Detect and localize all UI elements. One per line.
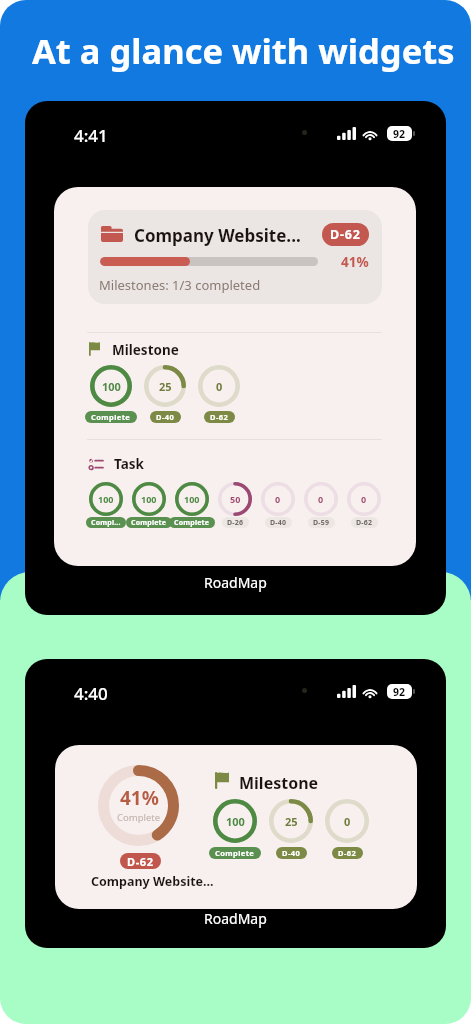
staticText: D-59 xyxy=(313,518,330,528)
staticText: 25 xyxy=(285,814,298,829)
staticText: D-40 xyxy=(282,848,301,858)
staticText: RoadMap xyxy=(204,573,267,592)
staticText: D-40 xyxy=(270,518,287,528)
staticText: Complete xyxy=(117,811,161,824)
staticText: Company Website... xyxy=(91,873,214,890)
staticText: At a glance with widgets xyxy=(32,27,455,74)
staticText: 100 xyxy=(98,493,114,505)
staticText: Company Website... xyxy=(134,224,301,247)
staticText: Milestones: 1/3 completed xyxy=(99,276,261,294)
staticText: 4:40 xyxy=(74,682,108,705)
staticText: 0 xyxy=(361,493,367,505)
staticText: Compl... xyxy=(91,518,121,528)
staticText: 41% xyxy=(120,785,159,811)
staticText: D-62 xyxy=(127,854,154,869)
staticText: 50 xyxy=(230,493,241,505)
staticText: Complete xyxy=(215,848,255,858)
staticText: 100 xyxy=(102,379,121,394)
staticText: 0 xyxy=(216,379,223,394)
staticText: 4:41 xyxy=(74,124,108,147)
staticText: D-40 xyxy=(156,412,175,422)
staticText: Complete xyxy=(131,518,167,528)
staticText: 92 xyxy=(393,127,406,141)
staticText: 0 xyxy=(275,493,281,505)
staticText: D-62 xyxy=(330,226,361,243)
staticText: Complete xyxy=(91,412,131,422)
staticText: 100 xyxy=(141,493,157,505)
staticText: 92 xyxy=(393,685,406,699)
staticText: D-62 xyxy=(338,848,357,858)
staticText: Milestone xyxy=(239,772,319,794)
staticText: Milestone xyxy=(112,341,179,359)
staticText: Task xyxy=(114,455,144,473)
staticText: 0 xyxy=(318,493,324,505)
staticText: 100 xyxy=(226,814,245,829)
staticText: 0 xyxy=(344,814,351,829)
staticText: D-26 xyxy=(227,518,244,528)
staticText: D-62 xyxy=(356,518,373,528)
staticText: RoadMap xyxy=(204,909,267,928)
staticText: 41% xyxy=(341,253,369,271)
staticText: 100 xyxy=(184,493,200,505)
staticText: Complete xyxy=(174,518,210,528)
staticText: D-62 xyxy=(210,412,229,422)
staticText: 25 xyxy=(159,379,172,394)
